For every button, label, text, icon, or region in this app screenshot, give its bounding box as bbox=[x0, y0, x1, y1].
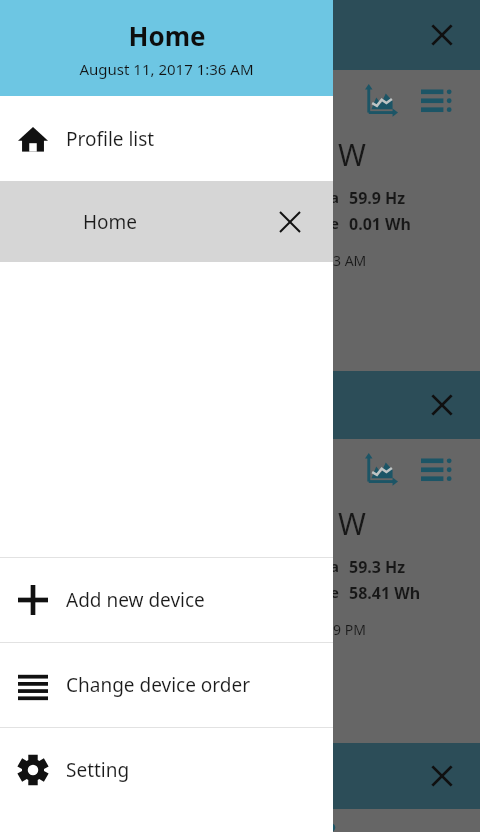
button[interactable]: Change device order bbox=[0, 643, 333, 727]
staticText: Profile list bbox=[66, 126, 155, 152]
staticText: 0.01 Wh bbox=[349, 213, 411, 235]
button[interactable]: List bbox=[416, 449, 458, 491]
staticText: e bbox=[330, 213, 339, 233]
staticText: 58.41 Wh bbox=[349, 582, 421, 604]
button[interactable]: Add new device bbox=[0, 558, 333, 642]
staticText: 39 PM bbox=[325, 620, 366, 639]
staticText: W bbox=[338, 134, 366, 175]
button[interactable]: Setting bbox=[0, 728, 333, 812]
button[interactable]: Chart bbox=[360, 80, 402, 122]
staticText: e bbox=[330, 582, 339, 602]
button[interactable]: Close device bbox=[420, 383, 464, 427]
button[interactable]: Close device bbox=[420, 754, 464, 798]
staticText: 59.9 Hz bbox=[349, 187, 406, 209]
button[interactable]: Profile list bbox=[0, 96, 333, 181]
staticText: 59.3 Hz bbox=[349, 556, 406, 578]
staticText: 33 AM bbox=[325, 251, 367, 270]
button[interactable]: Home bbox=[0, 181, 333, 262]
staticText: August 11, 2017 1:36 AM bbox=[79, 59, 254, 79]
button[interactable]: Chart bbox=[360, 449, 402, 491]
button[interactable]: Close Home bbox=[270, 202, 310, 242]
staticText: W bbox=[338, 503, 366, 544]
staticText: Change device order bbox=[66, 672, 251, 698]
staticText: Home bbox=[83, 209, 138, 235]
staticText: Home bbox=[128, 18, 206, 53]
staticText: a bbox=[330, 556, 339, 576]
staticText: Add new device bbox=[66, 587, 205, 613]
staticText: a bbox=[330, 187, 339, 207]
button[interactable]: List bbox=[416, 80, 458, 122]
staticText: Setting bbox=[66, 757, 130, 783]
button[interactable]: Close device bbox=[420, 13, 464, 57]
